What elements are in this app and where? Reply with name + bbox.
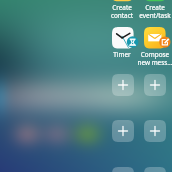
button[interactable]: Add shortcut: [112, 120, 134, 142]
button[interactable]: Compose new message: [144, 27, 172, 55]
button[interactable]: Timer: [112, 27, 140, 55]
staticText: Compose new mess...: [135, 50, 172, 67]
staticText: Create event/task: [135, 3, 172, 20]
button[interactable]: Add shortcut: [144, 167, 166, 172]
button[interactable]: Add shortcut: [144, 74, 166, 96]
button[interactable]: Add shortcut: [144, 120, 166, 142]
staticText: Create contact: [102, 3, 142, 20]
button[interactable]: Add shortcut: [112, 167, 134, 172]
staticText: Timer: [102, 50, 142, 59]
button[interactable]: Add shortcut: [112, 74, 134, 96]
